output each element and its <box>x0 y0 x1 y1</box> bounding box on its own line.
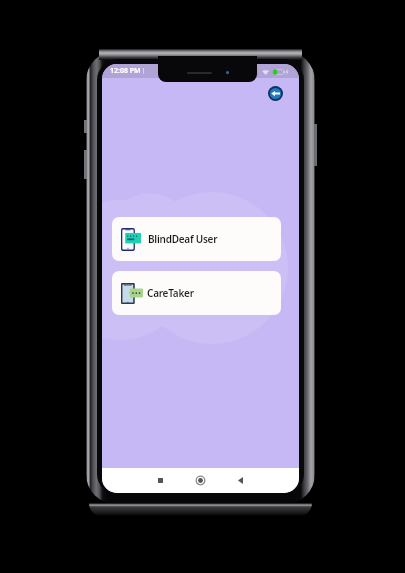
button[interactable]: Back <box>268 86 283 101</box>
button[interactable]: Recents <box>155 475 166 486</box>
staticText: CareTaker <box>147 286 194 300</box>
button[interactable]: Back <box>235 475 246 486</box>
staticText: 12:08 PM <box>110 66 141 76</box>
button[interactable]: Home <box>195 475 206 486</box>
button[interactable]: CareTaker <box>112 271 281 315</box>
staticText: BlindDeaf User <box>148 232 218 246</box>
button[interactable]: BlindDeaf User <box>112 217 281 261</box>
